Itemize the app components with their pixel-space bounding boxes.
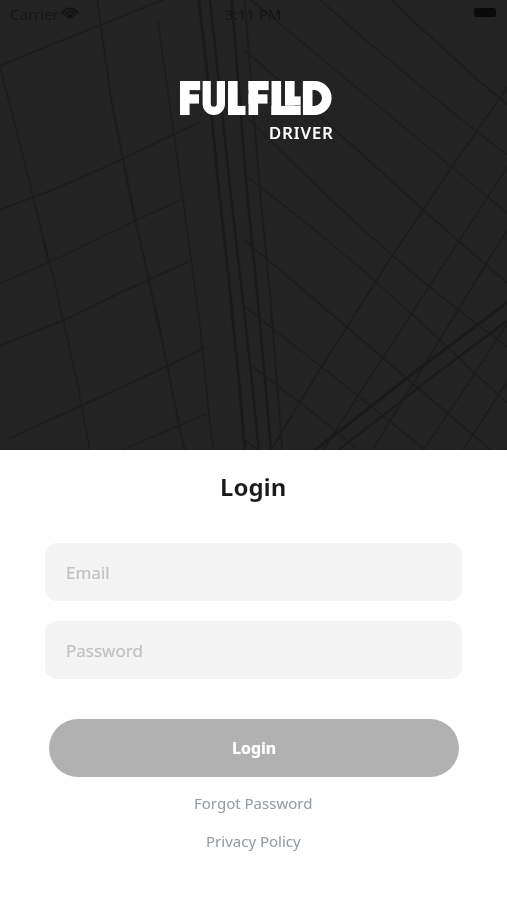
staticText: Carrier	[10, 4, 59, 24]
staticText: Privacy Policy	[206, 831, 301, 851]
staticText: DRIVER	[269, 121, 334, 143]
button[interactable]: Privacy Policy	[206, 831, 301, 851]
button[interactable]: Password	[45, 621, 462, 679]
button[interactable]: Forgot Password	[194, 793, 313, 813]
staticText: Password	[66, 639, 143, 662]
button[interactable]: Login	[49, 719, 459, 777]
staticText: Forgot Password	[194, 793, 313, 813]
staticText: Login	[220, 470, 287, 503]
staticText: Login	[232, 737, 277, 759]
button[interactable]: Email	[45, 543, 462, 601]
staticText: 3:11 PM	[225, 4, 282, 24]
staticText: Email	[66, 561, 110, 584]
